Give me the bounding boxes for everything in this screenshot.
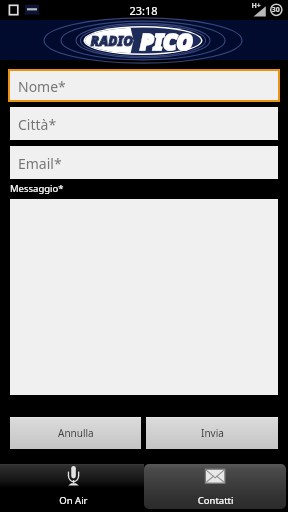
staticText: Nome* (18, 77, 66, 96)
button[interactable]: Città* (10, 107, 278, 140)
button[interactable]: Email* (10, 146, 278, 179)
button[interactable] (144, 464, 286, 509)
button[interactable]: Invia (146, 417, 278, 449)
staticText: Invia (201, 426, 224, 440)
staticText: Messaggio* (10, 182, 64, 195)
button[interactable]: Nome* (10, 71, 278, 100)
staticText: Annulla (58, 426, 94, 440)
button[interactable]: On Air (0, 464, 144, 512)
staticText: Città* (18, 115, 57, 134)
button[interactable]: Annulla (10, 417, 141, 449)
staticText: Email* (18, 154, 62, 173)
